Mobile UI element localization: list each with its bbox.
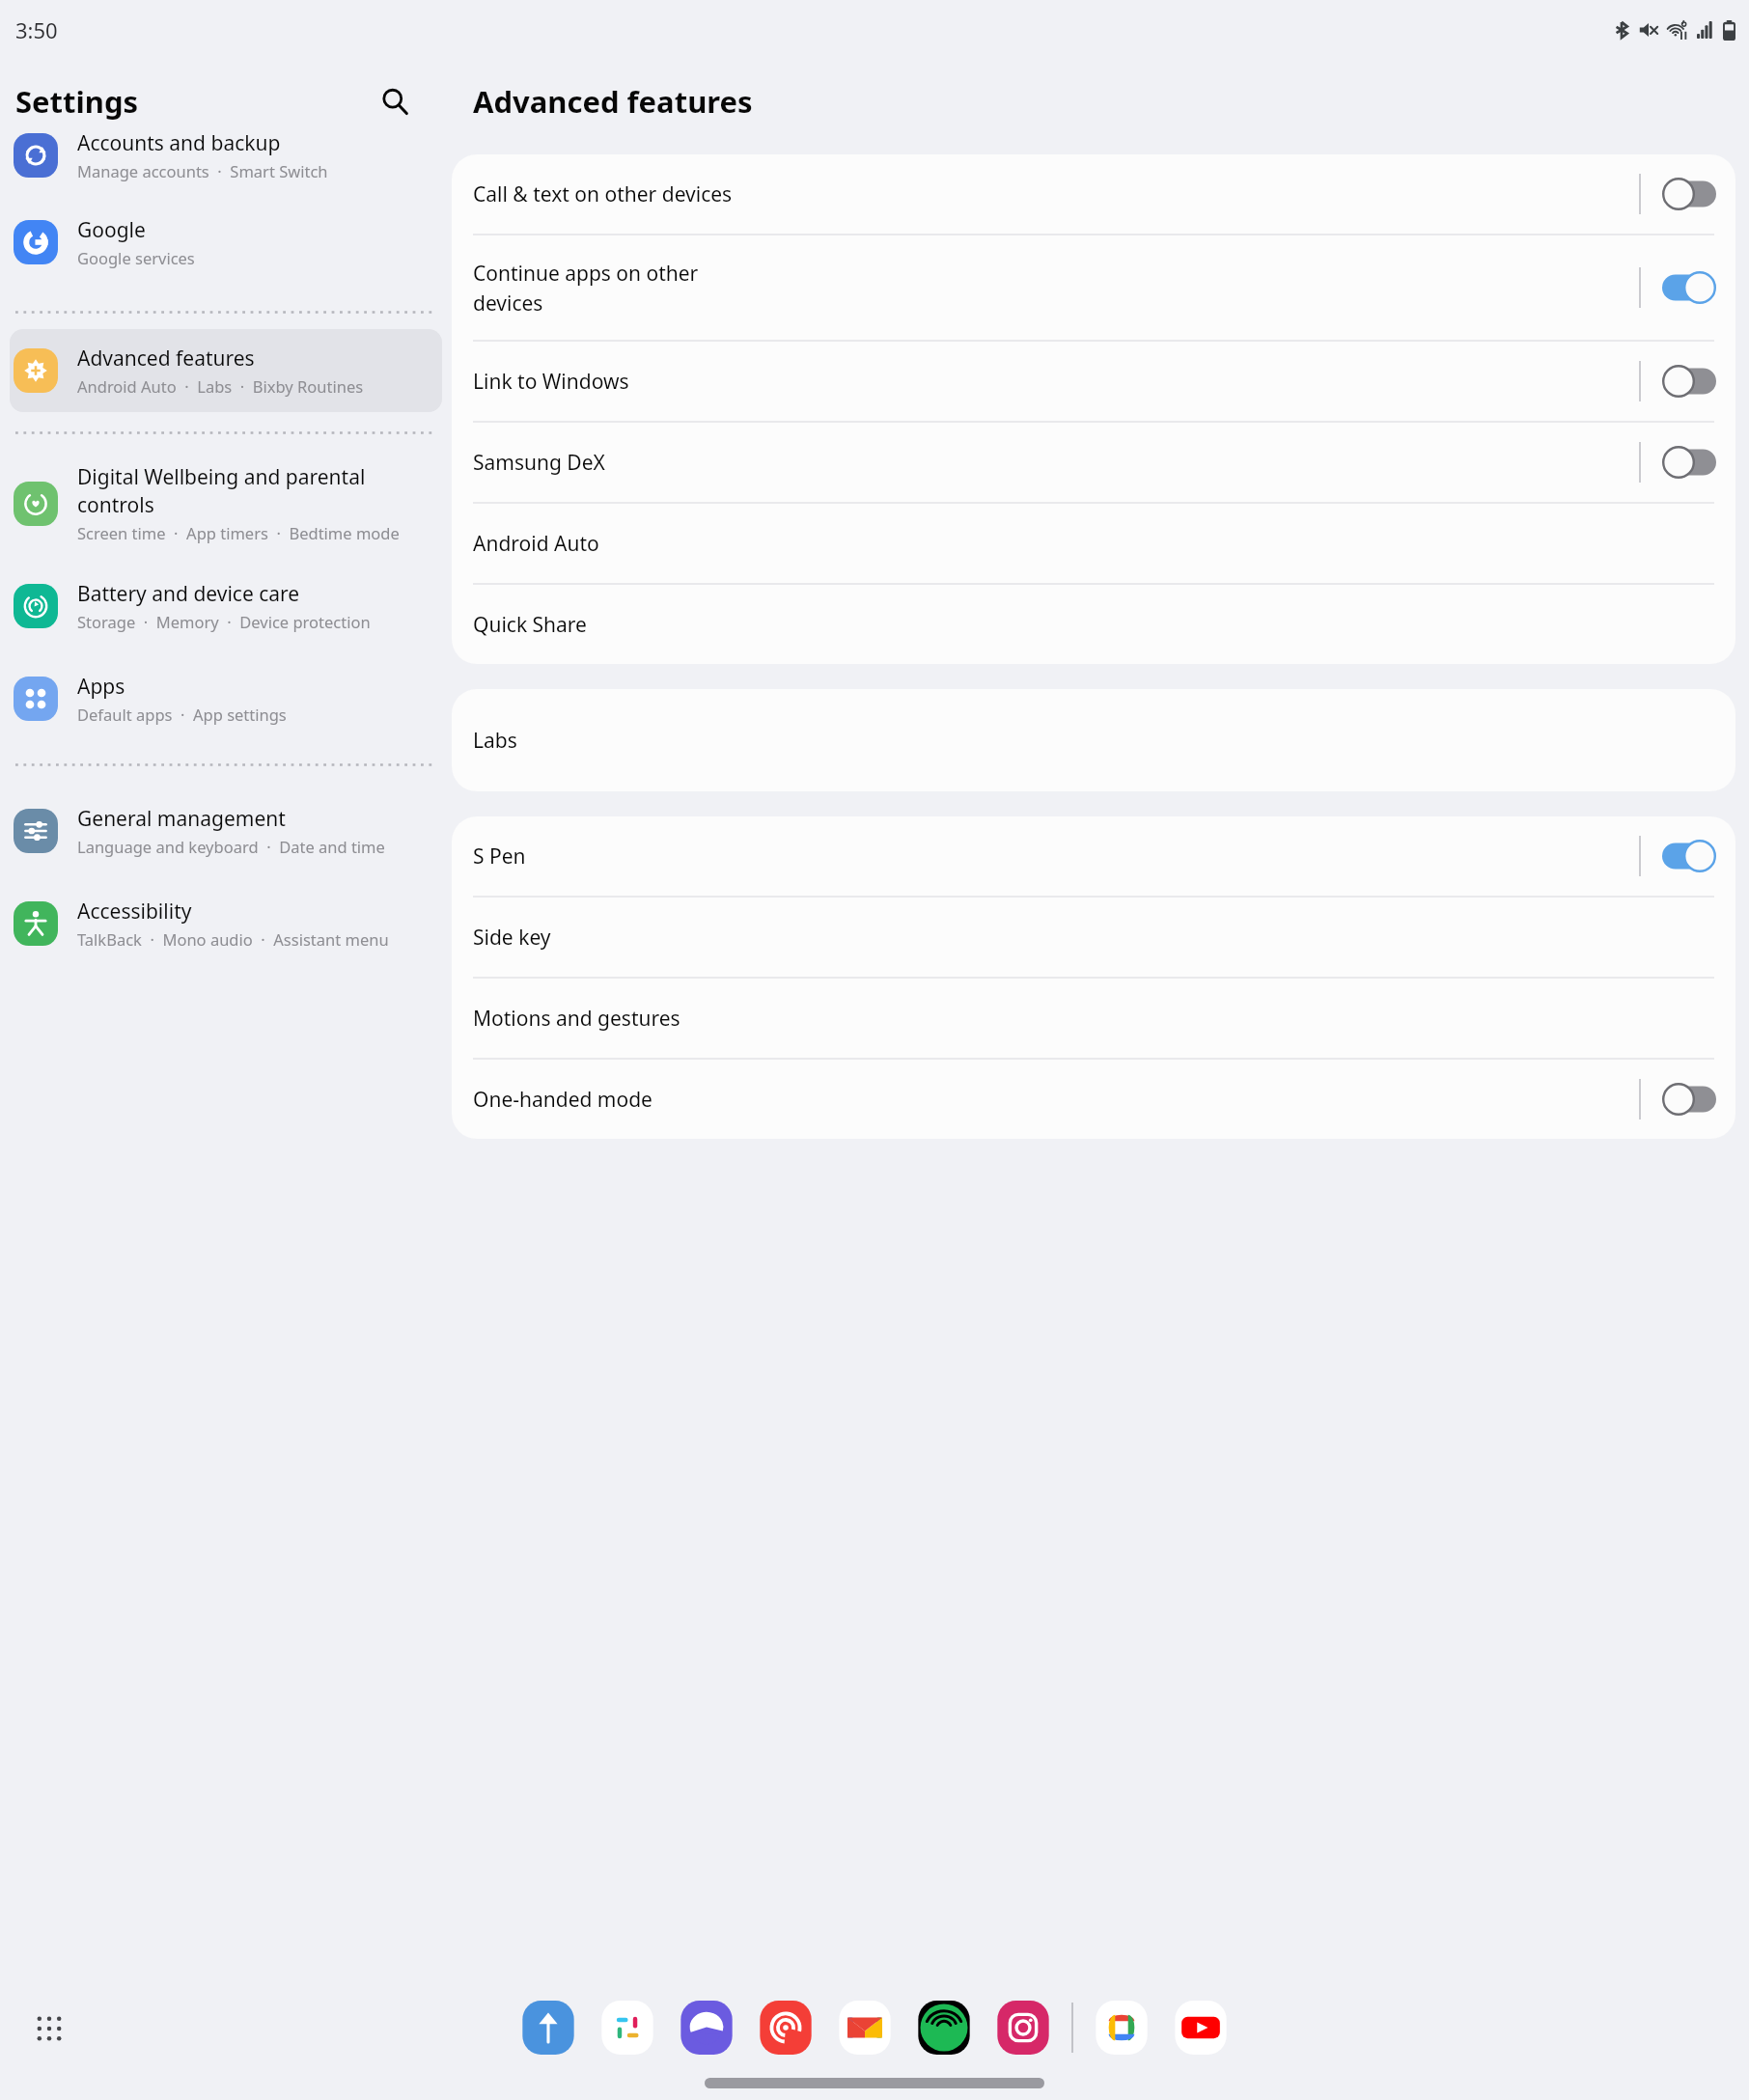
staticText: Google services (77, 247, 195, 268)
button[interactable]: Labs (452, 689, 1735, 791)
button[interactable]: Continue apps on other devices (452, 235, 1735, 340)
staticText: Android Auto · Labs · Bixby Routines (77, 375, 364, 397)
staticText: Samsung DeX (473, 449, 1639, 477)
staticText: Google (77, 216, 146, 244)
staticText: Battery and device care (77, 580, 300, 608)
staticText: Manage accounts · Smart Switch (77, 160, 328, 181)
button[interactable]: Android Auto (452, 504, 1735, 583)
button[interactable]: Search (373, 79, 417, 124)
staticText: TalkBack · Mono audio · Assistant menu (77, 928, 389, 950)
staticText: Storage · Memory · Device protection (77, 611, 371, 632)
staticText: Side key (473, 924, 551, 952)
button[interactable]: Google Photos (1091, 1997, 1152, 2059)
button[interactable]: Smart Switch (517, 1997, 579, 2059)
button[interactable]: Slack (597, 1997, 658, 2059)
button[interactable]: Digital Wellbeing and parental (0, 463, 452, 543)
button[interactable]: Advanced features (10, 329, 442, 412)
staticText: Default apps · App settings (77, 704, 287, 725)
staticText: Apps (77, 673, 125, 701)
staticText: 3:50 (15, 15, 58, 44)
button[interactable]: Samsung DeX (452, 423, 1735, 502)
button[interactable]: General management (0, 797, 452, 865)
staticText: One-handed mode (473, 1086, 1639, 1114)
button[interactable]: Motions and gestures (452, 979, 1735, 1058)
staticText: Advanced features (473, 81, 753, 122)
button[interactable]: Instagram (992, 1997, 1054, 2059)
button[interactable]: Call & text on other devices (452, 154, 1735, 234)
staticText: Android Auto (473, 530, 599, 558)
staticText: Settings (15, 81, 139, 122)
staticText: Labs (473, 727, 517, 755)
button[interactable]: Accessibility (0, 890, 452, 957)
staticText: Quick Share (473, 611, 587, 639)
staticText: Language and keyboard · Date and time (77, 836, 385, 857)
staticText: General management (77, 805, 286, 833)
staticText: Accessibility (77, 898, 192, 926)
button[interactable]: S Pen (452, 816, 1735, 896)
staticText: Digital Wellbeing and parental (77, 463, 366, 491)
button[interactable]: Apps (0, 665, 452, 732)
button[interactable]: Google (0, 208, 452, 276)
button[interactable]: Quick Share (452, 585, 1735, 664)
staticText: controls (77, 491, 154, 519)
staticText: Motions and gestures (473, 1005, 680, 1033)
staticText: Continue apps on other devices (473, 260, 1639, 317)
button[interactable]: Link to Windows (452, 342, 1735, 421)
button[interactable]: YouTube (1170, 1997, 1232, 2059)
button[interactable]: Side key (452, 898, 1735, 977)
button[interactable]: Spotify (913, 1997, 975, 2059)
staticText: Call & text on other devices (473, 180, 1639, 208)
staticText: Screen time · App timers · Bedtime mode (77, 522, 400, 543)
button[interactable]: Pocket Casts (755, 1997, 817, 2059)
staticText: S Pen (473, 843, 1639, 870)
staticText: Link to Windows (473, 368, 1639, 396)
staticText: Accounts and backup (77, 129, 281, 157)
button[interactable]: Accounts and backup (0, 143, 452, 208)
staticText: Advanced features (77, 345, 255, 373)
button[interactable]: Browser (676, 1997, 737, 2059)
button[interactable]: All apps (21, 2001, 77, 2057)
button[interactable]: Gmail (834, 1997, 896, 2059)
button[interactable]: Battery and device care (0, 572, 452, 640)
button[interactable]: One-handed mode (452, 1060, 1735, 1139)
